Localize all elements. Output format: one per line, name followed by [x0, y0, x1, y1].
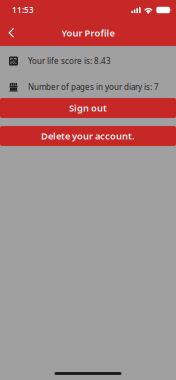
staticText: Your Profile	[61, 27, 114, 39]
button[interactable]: Delete your account.	[0, 126, 176, 146]
staticText: Number of pages in your diary is: 7	[28, 82, 159, 92]
button[interactable]: Sign out	[0, 98, 176, 118]
staticText: Sign out	[69, 102, 107, 114]
staticText: 11:53	[12, 5, 34, 15]
button[interactable]: Back	[0, 20, 19, 46]
staticText: Your life score is: 8.43	[28, 56, 111, 66]
staticText: Delete your account.	[41, 130, 135, 142]
